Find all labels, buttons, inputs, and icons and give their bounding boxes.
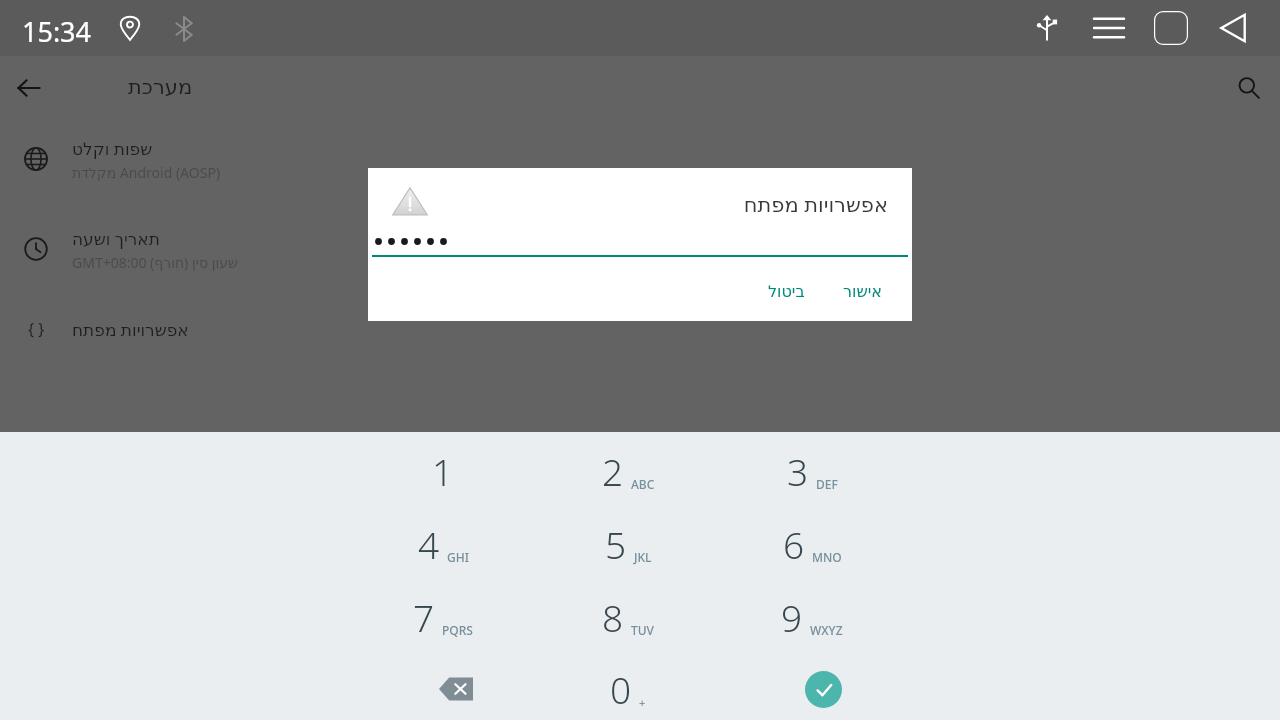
button[interactable]: USB (1016, 0, 1078, 56)
button[interactable]: 2 (553, 438, 703, 504)
button[interactable]: 6 (737, 511, 887, 577)
staticText: שפות וקלט (72, 137, 153, 160)
staticText: 7 (413, 592, 435, 642)
staticText: 2 (602, 446, 624, 496)
button[interactable]: { } (0, 306, 1280, 352)
staticText: ABC (631, 476, 655, 492)
staticText: אישור (843, 282, 882, 301)
button[interactable]: Delete (422, 663, 490, 715)
staticText: 15:34 (22, 13, 92, 50)
staticText: TUV (631, 622, 654, 638)
button[interactable]: 0 (553, 656, 703, 720)
staticText: WXYZ (810, 622, 843, 638)
staticText: מקלדת Android (AOSP) (72, 163, 221, 182)
staticText: 1 (432, 446, 454, 496)
staticText: תאריך ושעה (72, 227, 160, 250)
button[interactable]: אישור (829, 274, 896, 309)
staticText: 6 (783, 519, 805, 569)
button[interactable]: Search (1226, 65, 1272, 111)
button[interactable]: 1 (368, 438, 518, 504)
button[interactable]: 8 (553, 584, 703, 650)
staticText: GMT+08:00 שעון סין (חורף) (72, 253, 238, 272)
staticText: DEF (816, 476, 838, 492)
button[interactable]: Menu (1078, 0, 1140, 56)
staticText: אפשרויות מפתח (72, 318, 189, 341)
button[interactable]: 9 (737, 584, 887, 650)
staticText: מערכת (128, 75, 193, 99)
button[interactable]: תאריך ושעה (0, 218, 1280, 280)
staticText: GHI (447, 549, 469, 565)
staticText: 5 (605, 519, 627, 569)
button[interactable]: 4 (368, 511, 518, 577)
button[interactable]: 3 (737, 438, 887, 504)
button[interactable]: Navigate up (6, 65, 52, 111)
staticText: 0 (610, 664, 632, 714)
staticText: { } (28, 318, 45, 340)
button[interactable]: שפות וקלט (0, 128, 1280, 190)
staticText: 9 (781, 592, 803, 642)
button[interactable]: 5 (553, 511, 703, 577)
staticText: PQRS (442, 622, 473, 638)
staticText: ביטול (768, 282, 805, 301)
staticText: 4 (418, 519, 440, 569)
staticText: 3 (787, 446, 809, 496)
staticText: אפשרויות מפתח (368, 190, 888, 219)
staticText: + (639, 695, 646, 710)
staticText: 8 (602, 592, 624, 642)
button[interactable]: Home (1140, 0, 1202, 56)
button[interactable]: ביטול (754, 274, 819, 309)
button[interactable]: 7 (368, 584, 518, 650)
button[interactable]: Back (1202, 0, 1264, 56)
staticText: MNO (812, 549, 842, 565)
button[interactable]: Confirm (789, 659, 857, 719)
staticText: JKL (634, 549, 652, 565)
